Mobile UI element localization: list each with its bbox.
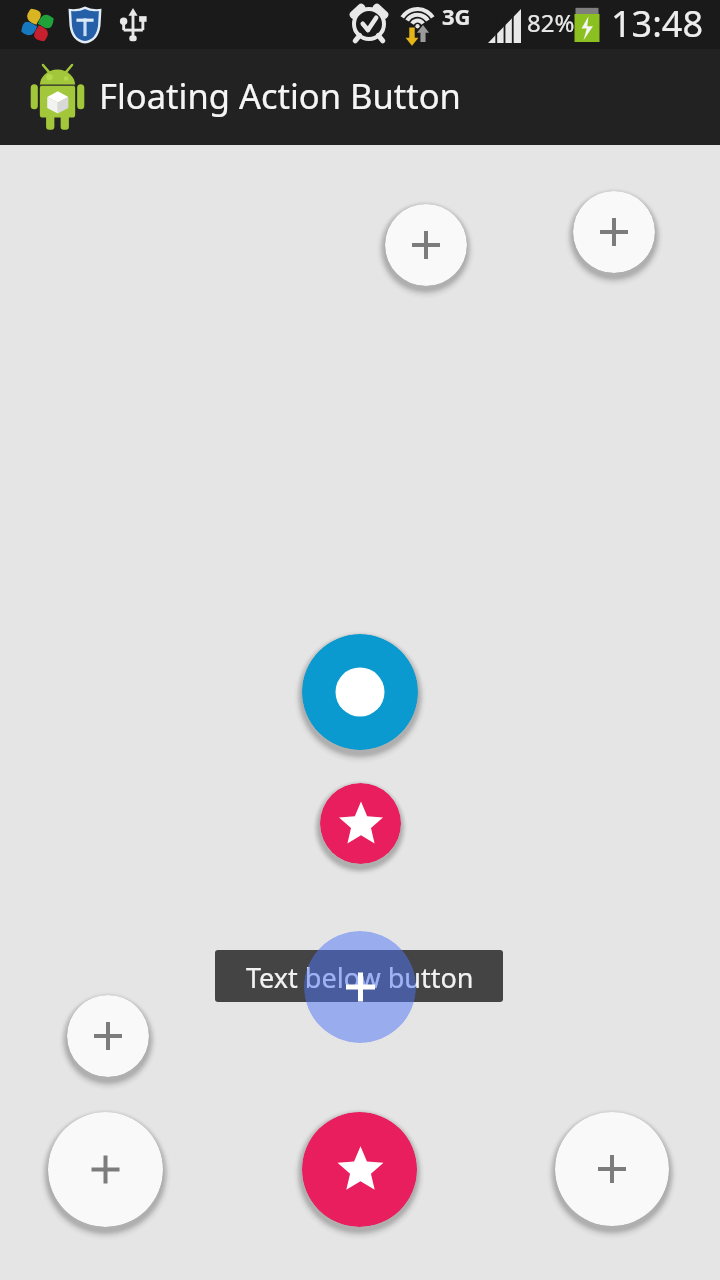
- button[interactable]: Add: [48, 1112, 163, 1227]
- button[interactable]: Up: [14, 57, 100, 137]
- button[interactable]: Favourite: [302, 1112, 417, 1227]
- button[interactable]: Add: [573, 191, 655, 273]
- button[interactable]: Add: [304, 931, 416, 1043]
- staticText: Floating Action Button: [99, 72, 461, 119]
- staticText: 3G: [442, 1, 471, 31]
- button[interactable]: Favourite: [320, 783, 401, 864]
- staticText: 82%: [527, 6, 575, 39]
- button[interactable]: Add: [67, 995, 149, 1077]
- button[interactable]: Add: [385, 204, 467, 286]
- button[interactable]: Add: [555, 1112, 669, 1226]
- staticText: 13:48: [611, 0, 704, 48]
- button[interactable]: Record: [302, 634, 418, 750]
- button[interactable]: Text below button: [215, 950, 503, 1002]
- staticText: Text below button: [246, 959, 474, 996]
